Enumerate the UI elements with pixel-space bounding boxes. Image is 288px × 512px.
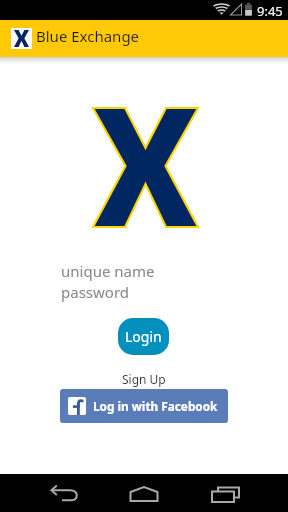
staticText: Log in with Facebook bbox=[93, 398, 218, 414]
staticText: Login bbox=[125, 327, 162, 346]
staticText: Blue Exchange bbox=[36, 26, 140, 46]
button[interactable]: Sign Up bbox=[118, 370, 170, 387]
button[interactable]: Login bbox=[118, 318, 169, 355]
staticText: unique name bbox=[61, 261, 155, 281]
button[interactable]: Back bbox=[40, 476, 88, 510]
staticText: Sign Up bbox=[122, 371, 166, 387]
button[interactable]: Log in with Facebook bbox=[60, 389, 228, 423]
button[interactable]: Recent apps bbox=[202, 476, 250, 510]
button[interactable]: password bbox=[61, 281, 227, 302]
button[interactable]: unique name bbox=[61, 260, 227, 281]
button[interactable]: Home bbox=[120, 476, 168, 510]
staticText: 9:45 bbox=[257, 2, 283, 20]
staticText: password bbox=[61, 282, 129, 302]
